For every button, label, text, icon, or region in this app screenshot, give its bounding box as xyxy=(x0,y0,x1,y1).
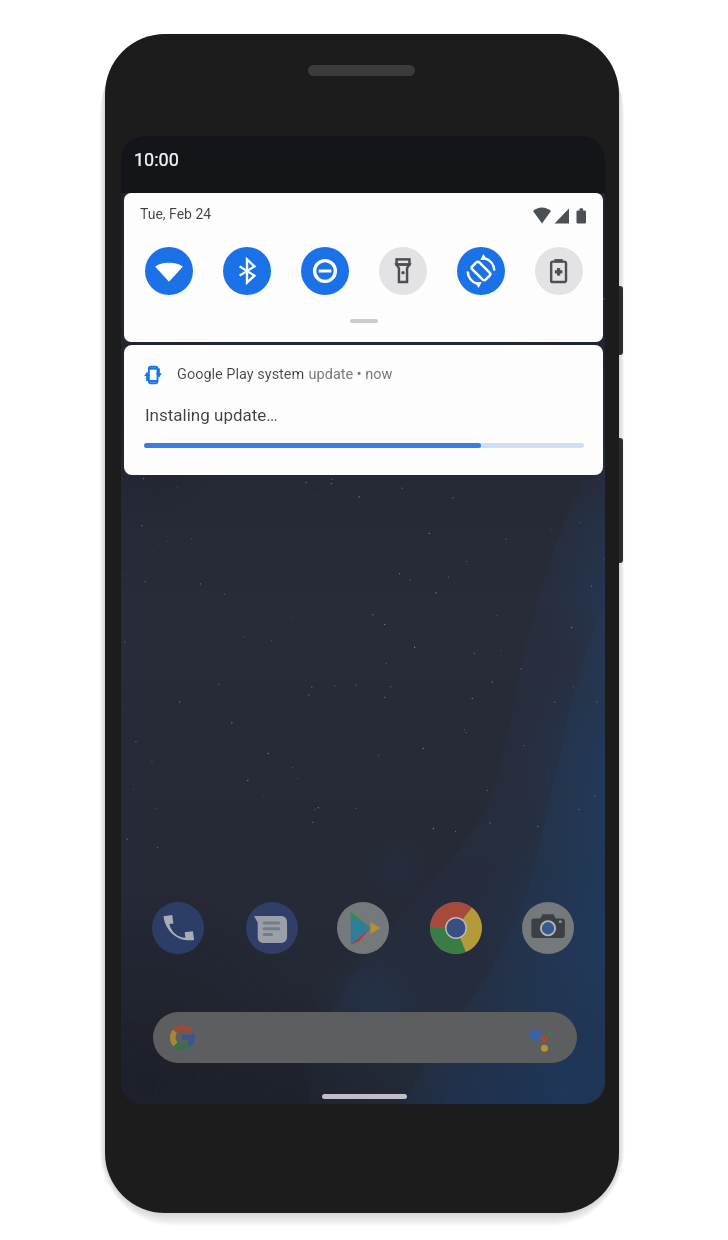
button[interactable]: Phone xyxy=(152,902,204,954)
staticText: update • now xyxy=(305,366,393,383)
button[interactable]: Flashlight xyxy=(379,247,427,295)
button[interactable]: Camera xyxy=(522,902,574,954)
button[interactable]: Battery saver xyxy=(535,247,583,295)
button[interactable]: Google Play system xyxy=(124,345,603,475)
button[interactable]: Bluetooth xyxy=(223,247,271,295)
button[interactable]: Wi-Fi xyxy=(145,247,193,295)
button[interactable]: Play Store xyxy=(337,902,389,954)
button[interactable]: Do not disturb xyxy=(301,247,349,295)
button[interactable]: Auto-rotate xyxy=(457,247,505,295)
staticText: Instaling update… xyxy=(145,405,278,425)
staticText: 10:00 xyxy=(134,149,179,170)
staticText: Tue, Feb 24 xyxy=(140,206,212,222)
button[interactable]: Search xyxy=(153,1012,577,1063)
button[interactable]: Messages xyxy=(246,902,298,954)
staticText: Google Play system xyxy=(177,366,305,383)
button[interactable]: Chrome xyxy=(430,902,482,954)
